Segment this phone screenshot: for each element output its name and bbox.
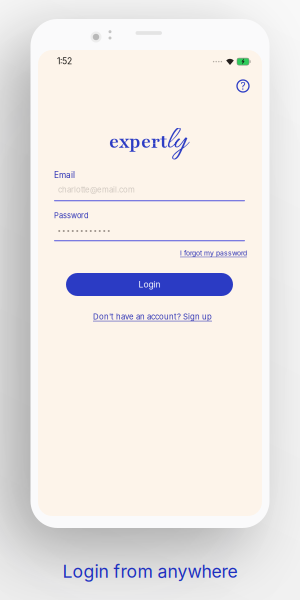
staticText: expert [109,129,167,154]
staticText: 1:52 [57,56,72,66]
button[interactable]: Don't have an account? Sign up [93,312,212,321]
staticText: Email [54,170,75,180]
staticText: ? [240,80,245,92]
staticText: Don't have an account? Sign up [93,312,212,321]
button[interactable]: Help [234,77,252,95]
staticText: Login from anywhere [62,561,237,582]
button[interactable]: I forgot my password [180,249,247,257]
staticText: I forgot my password [180,249,247,257]
staticText: charlotte@email.com [58,185,135,194]
staticText: Login [138,279,160,290]
button[interactable]: Login [66,273,233,296]
staticText: Password [54,211,89,220]
staticText: ly [167,122,187,162]
